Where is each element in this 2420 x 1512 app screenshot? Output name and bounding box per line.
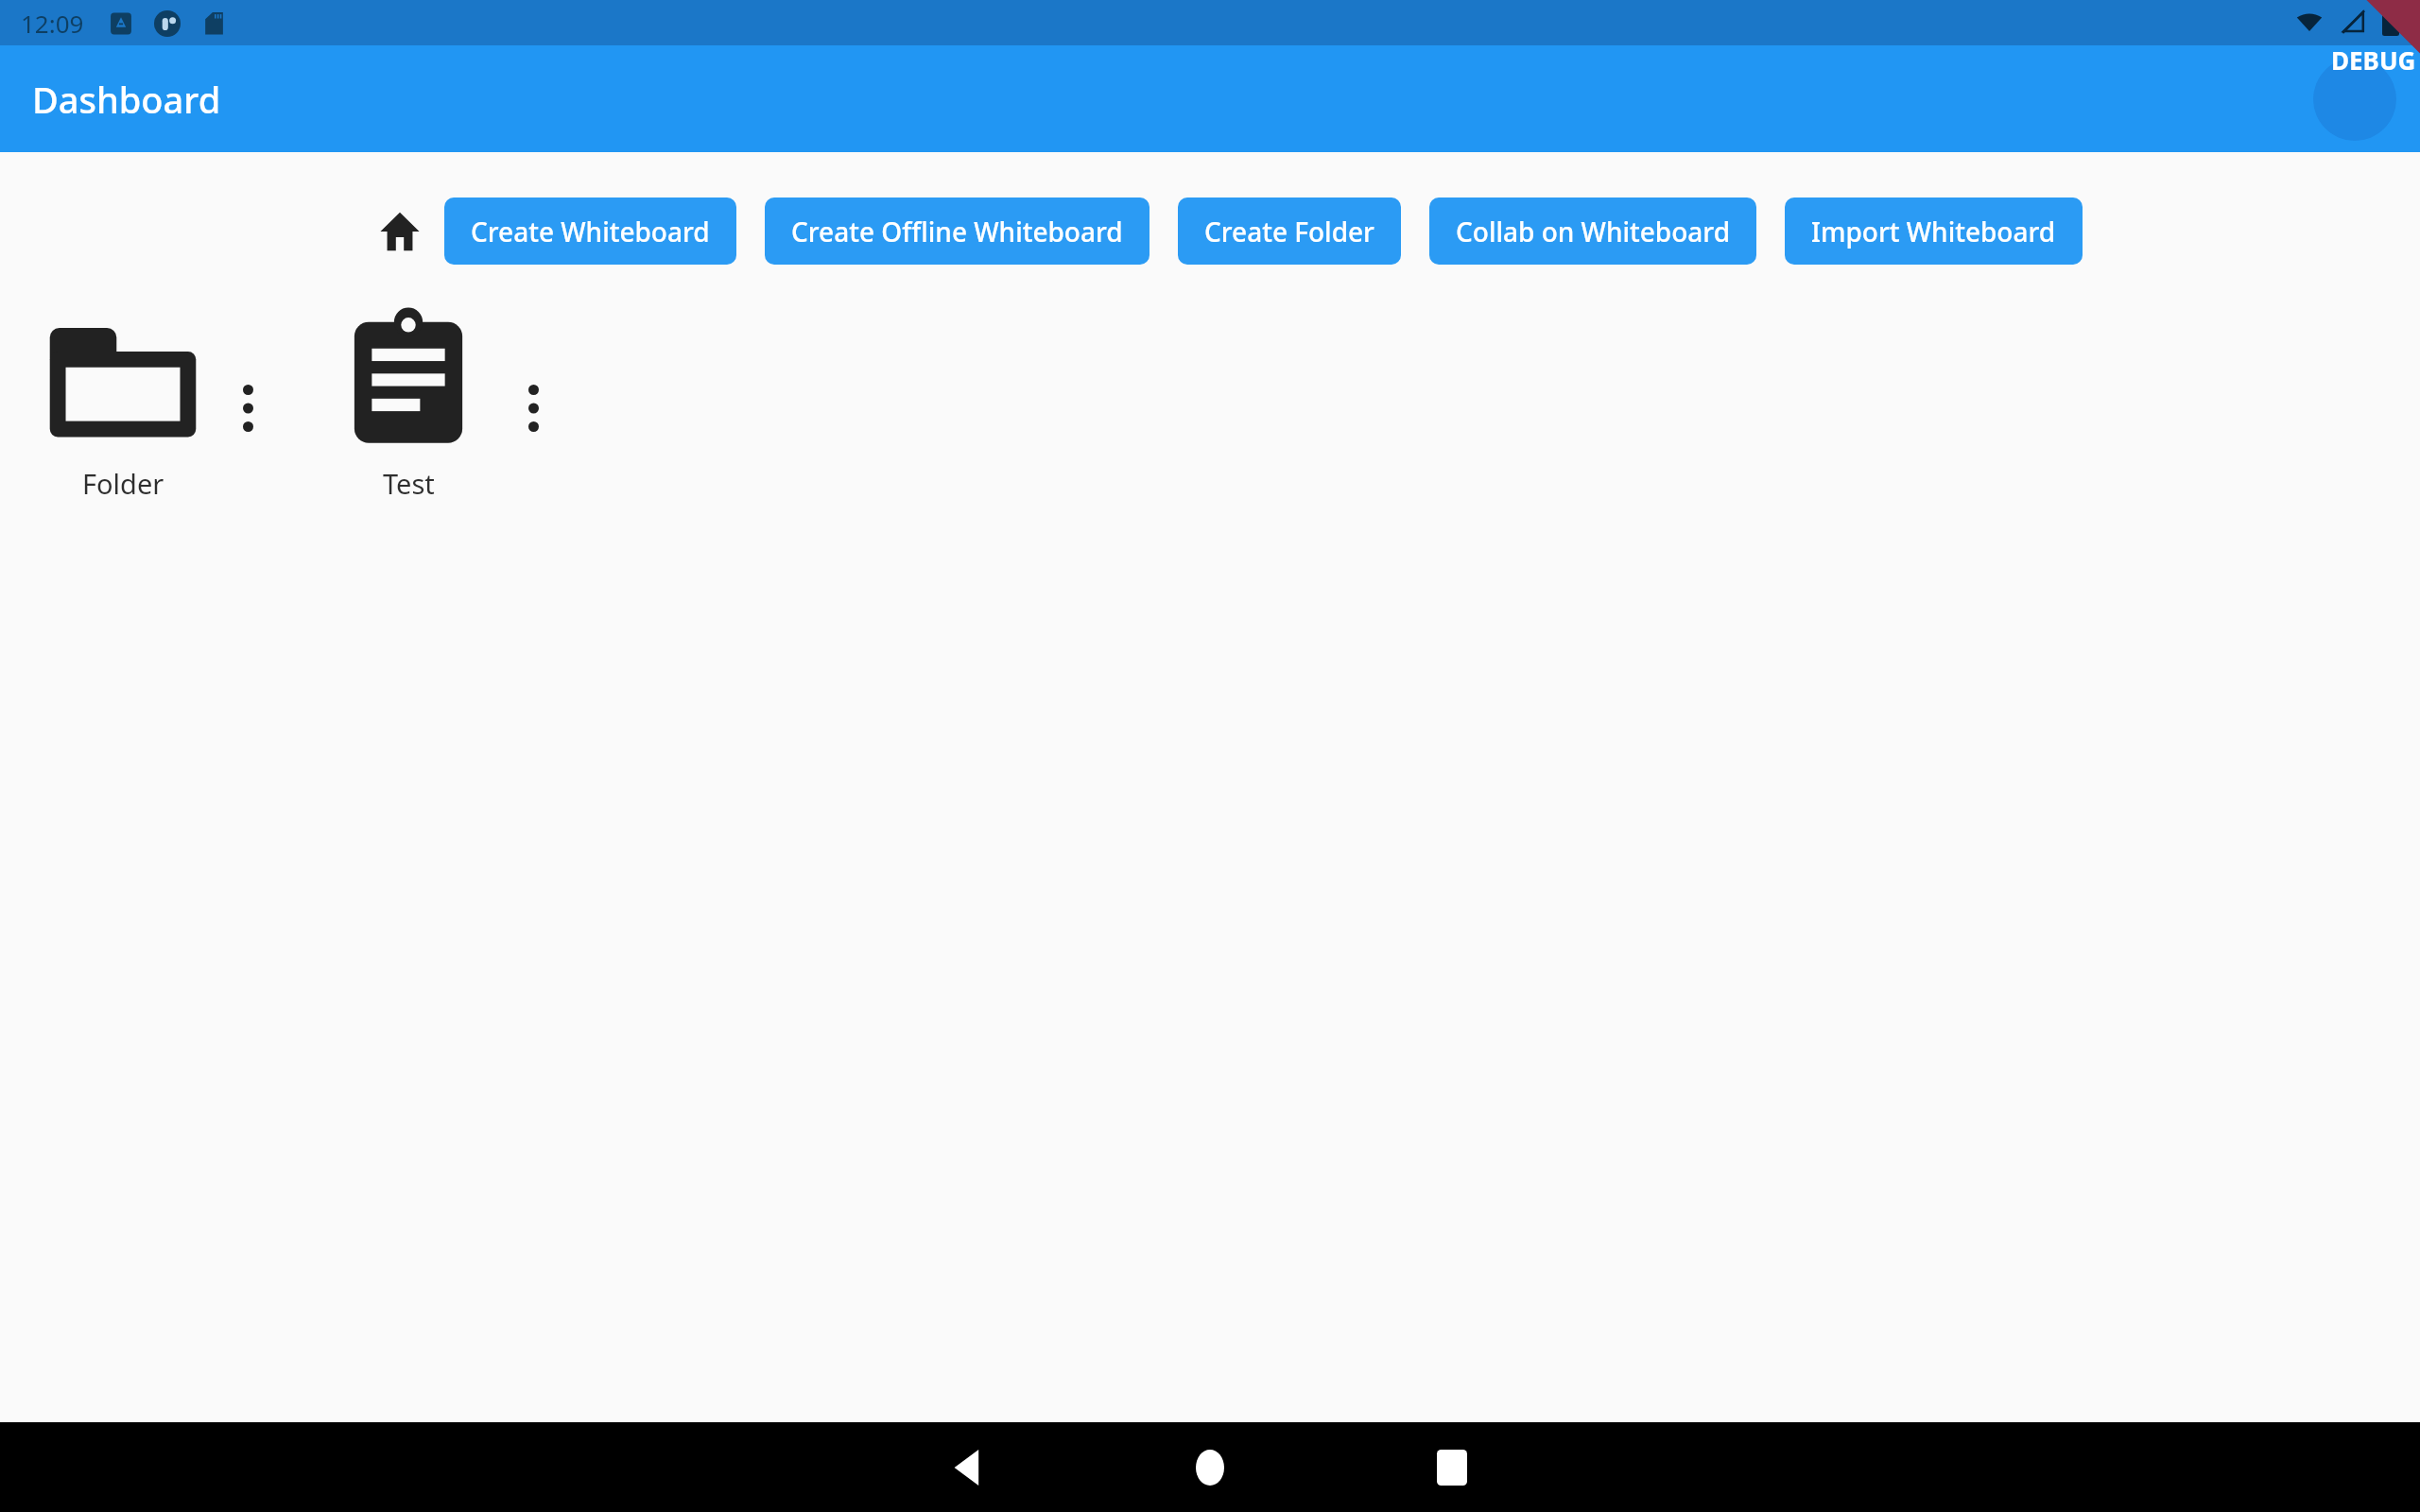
button[interactable]: More options [499,374,567,442]
button[interactable]: Recents [1405,1422,1499,1512]
staticText: DEBUG [2331,43,2416,77]
staticText: Import Whiteboard [1811,214,2056,249]
staticText: Collab on Whiteboard [1456,214,1730,249]
button[interactable]: Account [2303,47,2407,151]
button[interactable]: Create Whiteboard [444,198,736,265]
button[interactable]: Folder [43,304,202,502]
button[interactable]: Test [329,304,488,502]
button[interactable]: Collab on Whiteboard [1429,198,1756,265]
button[interactable]: More options [214,374,282,442]
staticText: Create Offline Whiteboard [791,214,1123,249]
staticText: Test [383,465,435,502]
staticText: Dashboard [32,75,221,124]
staticText: Create Whiteboard [471,214,710,249]
button[interactable]: Create Folder [1178,198,1401,265]
button[interactable]: Import Whiteboard [1785,198,2083,265]
staticText: Create Folder [1204,214,1374,249]
button[interactable]: Back [921,1422,1015,1512]
button[interactable]: Home [376,208,423,255]
staticText: Folder [82,465,164,502]
button[interactable]: Create Offline Whiteboard [765,198,1149,265]
button[interactable]: Home [1163,1422,1257,1512]
staticText: 12:09 [21,7,84,40]
